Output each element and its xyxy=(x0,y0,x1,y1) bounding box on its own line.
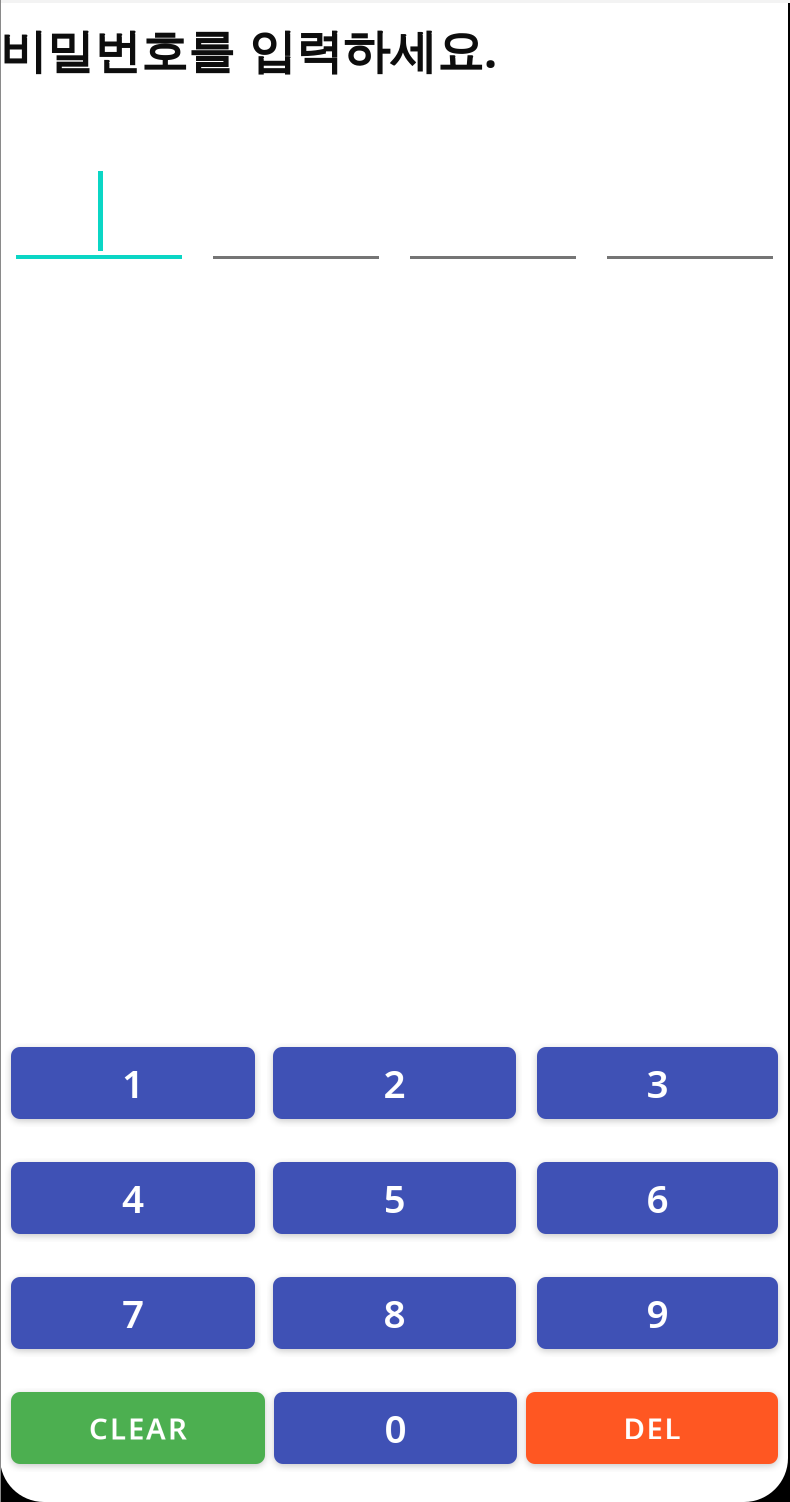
staticText: 5 xyxy=(383,1172,405,1224)
button[interactable]: CLEAR xyxy=(11,1392,265,1464)
staticText: 6 xyxy=(646,1172,668,1224)
staticText: DEL xyxy=(623,1408,680,1447)
button[interactable]: 3 xyxy=(537,1047,778,1119)
button[interactable]: 1 xyxy=(11,1047,255,1119)
button[interactable]: 6 xyxy=(537,1162,778,1234)
staticText: 4 xyxy=(122,1172,144,1224)
button[interactable]: 9 xyxy=(537,1277,778,1349)
button[interactable]: Passcode entry field xyxy=(16,167,773,259)
staticText: 8 xyxy=(383,1287,405,1339)
staticText: 0 xyxy=(384,1402,406,1454)
button[interactable]: 2 xyxy=(273,1047,516,1119)
button[interactable]: 7 xyxy=(11,1277,255,1349)
staticText: 2 xyxy=(383,1057,405,1109)
button[interactable]: DEL xyxy=(526,1392,778,1464)
staticText: 1 xyxy=(122,1057,144,1109)
button[interactable]: 4 xyxy=(11,1162,255,1234)
staticText: 7 xyxy=(122,1287,144,1339)
staticText: CLEAR xyxy=(89,1408,187,1447)
button[interactable]: 8 xyxy=(273,1277,516,1349)
button[interactable]: 5 xyxy=(273,1162,516,1234)
staticText: 3 xyxy=(646,1057,668,1109)
button[interactable]: 0 xyxy=(274,1392,517,1464)
staticText: 비밀번호를 입력하세요. xyxy=(0,19,497,81)
staticText: 9 xyxy=(646,1287,668,1339)
